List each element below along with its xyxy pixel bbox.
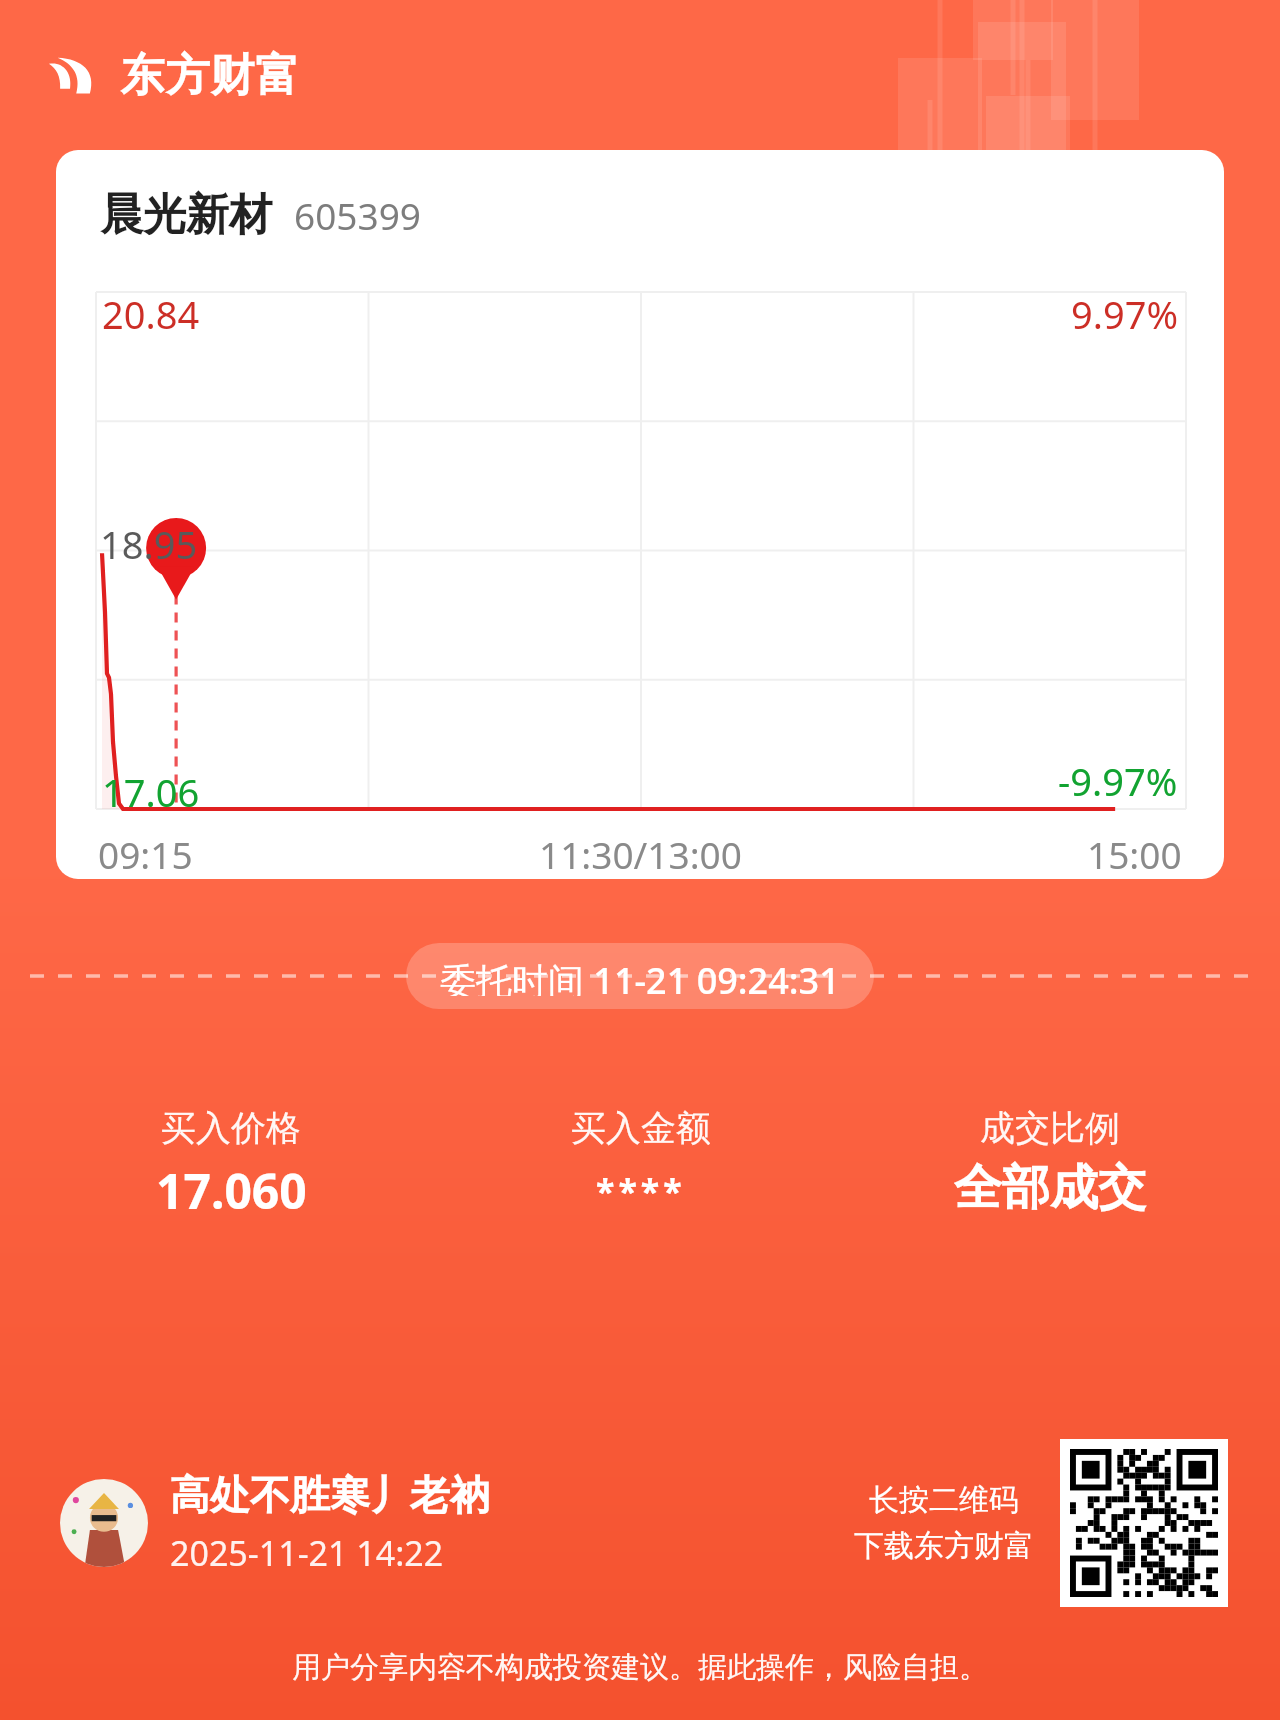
button[interactable]: 买入金额 (436, 1106, 845, 1214)
staticText: 晨光新材 (100, 188, 272, 242)
staticText: 长按二维码 (869, 1481, 1019, 1519)
staticText: 下载东方财富 (854, 1527, 1034, 1565)
staticText: 11:30/13:00 (539, 829, 742, 879)
button[interactable]: QR code, download app (1060, 1439, 1228, 1607)
button[interactable]: 买入价格 (26, 1106, 436, 1223)
staticText: 全部成交 (954, 1158, 1146, 1218)
button[interactable]: 晨光新材 (56, 150, 1224, 879)
staticText: **** (596, 1168, 686, 1214)
staticText: -9.97% (1058, 755, 1178, 807)
staticText: 09:15 (98, 829, 193, 879)
staticText: 买入金额 (571, 1106, 711, 1150)
staticText: 成交比例 (980, 1106, 1120, 1150)
staticText: 605399 (294, 190, 421, 240)
staticText: 20.84 (102, 288, 200, 340)
staticText: 委托时间 11-21 09:24:31 (440, 956, 840, 996)
button[interactable]: 委托时间 11-21 09:24:31 (406, 943, 874, 1009)
staticText: 2025-11-21 14:22 (170, 1530, 444, 1576)
staticText: 15:00 (1087, 829, 1182, 879)
other: Logo (44, 44, 106, 106)
staticText: 17.060 (156, 1158, 307, 1223)
staticText: 东方财富 (120, 48, 300, 103)
staticText: 18.95 (100, 518, 198, 570)
button[interactable]: 成交比例 (845, 1106, 1254, 1218)
staticText: 高处不胜寒丿老衲 (170, 1470, 490, 1520)
button[interactable]: User avatar (60, 1479, 148, 1567)
staticText: 用户分享内容不构成投资建议。据此操作，风险自担。 (0, 1649, 1280, 1686)
staticText: 17.06 (102, 766, 200, 818)
staticText: 9.97% (1071, 288, 1178, 340)
staticText: 买入价格 (161, 1106, 301, 1150)
